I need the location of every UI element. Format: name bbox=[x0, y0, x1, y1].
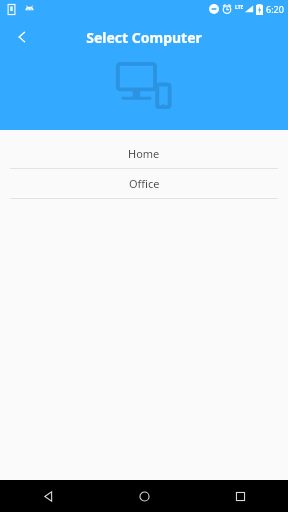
button[interactable]: Home bbox=[96, 480, 192, 512]
staticText: LTE bbox=[235, 4, 244, 11]
button[interactable]: Office bbox=[0, 169, 288, 198]
button[interactable]: Back bbox=[0, 480, 96, 512]
staticText: 6:20 bbox=[266, 3, 284, 15]
button[interactable]: Home bbox=[0, 139, 288, 168]
button[interactable]: Back bbox=[6, 21, 38, 53]
staticText: Select Computer bbox=[86, 28, 202, 47]
staticText: Office bbox=[129, 176, 160, 191]
button[interactable]: Recent apps bbox=[192, 480, 288, 512]
staticText: Home bbox=[128, 146, 160, 161]
